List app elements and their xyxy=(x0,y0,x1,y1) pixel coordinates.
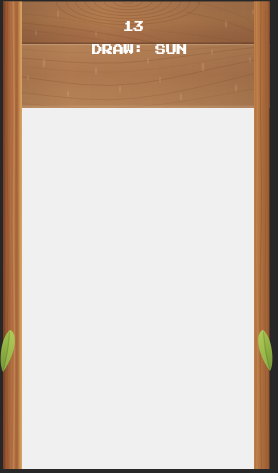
button[interactable]: 13 xyxy=(0,0,278,108)
staticText: DRAW: SUN xyxy=(92,44,188,55)
staticText: 13 xyxy=(123,21,145,32)
